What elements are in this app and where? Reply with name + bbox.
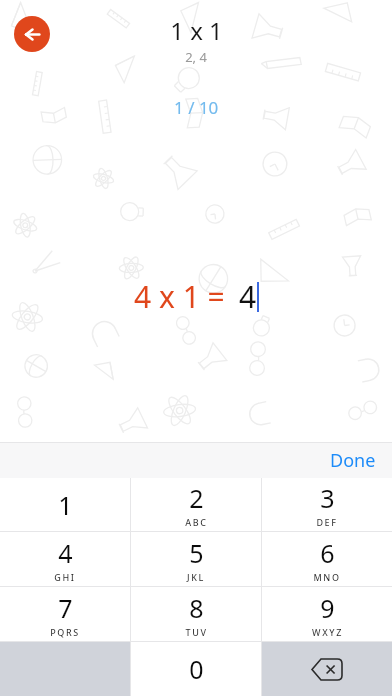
staticText: Done [330,448,376,473]
staticText: TUV [185,626,208,638]
staticText: 7 [58,591,73,625]
button[interactable]: Done [324,444,382,477]
staticText: 4 [239,276,257,317]
button[interactable]: Delete [262,642,392,696]
staticText: 5 [189,536,204,570]
staticText: JKL [187,571,205,583]
button[interactable]: 9 [262,587,392,641]
staticText: GHI [54,571,76,583]
staticText: 2 [189,481,204,515]
staticText: DEF [316,516,338,528]
staticText: 1 [58,488,73,522]
staticText: 6 [320,536,335,570]
staticText: 8 [189,591,204,625]
staticText: 4 x 1 = [134,276,225,317]
staticText: 1 / 10 [174,96,219,119]
button[interactable]: 1 [0,478,130,531]
button[interactable]: 4 [0,532,130,586]
staticText: MNO [313,571,341,583]
button[interactable]: 3 [262,478,392,531]
button[interactable]: 0 [131,642,261,696]
button[interactable]: Back [14,16,50,52]
staticText: 4 [58,536,73,570]
staticText: 1 x 1 [170,14,223,47]
staticText: 3 [320,481,335,515]
button[interactable]: 7 [0,587,130,641]
button[interactable]: 2 [131,478,261,531]
button[interactable]: 6 [262,532,392,586]
staticText: PQRS [50,626,80,638]
button[interactable]: 8 [131,587,261,641]
staticText: 9 [320,591,335,625]
staticText: WXYZ [312,626,343,638]
staticText: ABC [185,516,208,528]
staticText: 2, 4 [185,48,207,66]
staticText: 0 [189,652,204,686]
button[interactable]: 5 [131,532,261,586]
